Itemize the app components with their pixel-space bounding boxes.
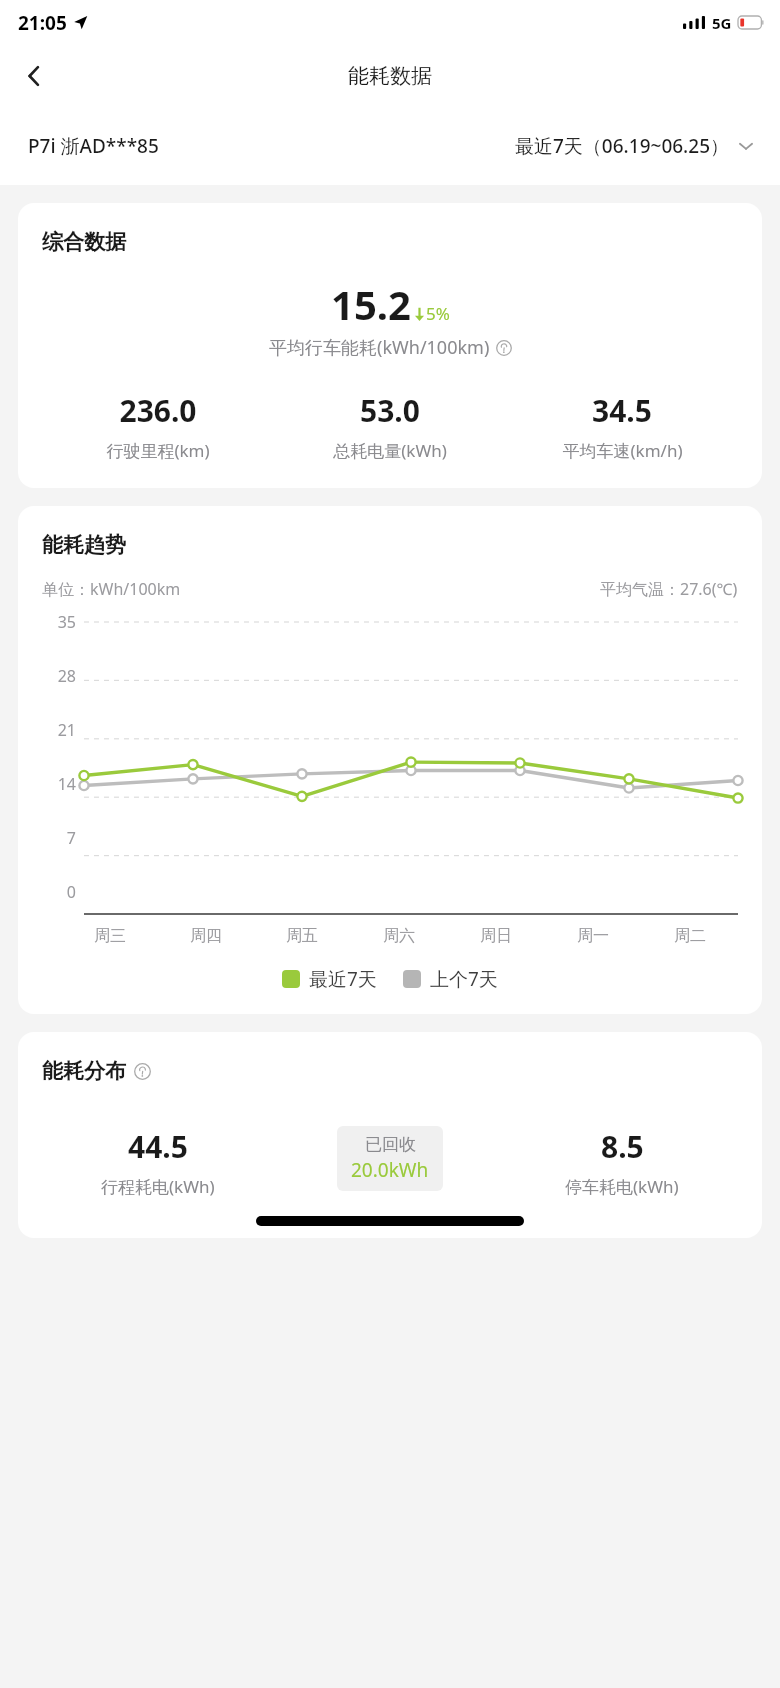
- staticText: 周六: [383, 926, 415, 946]
- staticText: P7i 浙AD***85: [28, 133, 159, 159]
- staticText: 7: [66, 827, 76, 849]
- staticText: 5%: [426, 302, 450, 325]
- staticText: 平均行车能耗(kWh/100km): [269, 335, 490, 360]
- button[interactable]: 53.0: [274, 390, 506, 462]
- staticText: 周日: [480, 926, 512, 946]
- staticText: 周四: [190, 926, 222, 946]
- staticText: 21:05: [18, 10, 67, 36]
- staticText: 21: [57, 719, 76, 741]
- staticText: 停车耗电(kWh): [565, 1175, 679, 1198]
- staticText: 平均车速(km/h): [562, 439, 683, 462]
- staticText: 34.5: [592, 390, 652, 431]
- staticText: 行驶里程(km): [106, 439, 210, 462]
- button[interactable]: Back: [8, 50, 60, 102]
- staticText: 平均气温：27.6(℃): [600, 578, 738, 600]
- staticText: 20.0kWh: [351, 1157, 429, 1183]
- staticText: 周三: [94, 926, 126, 946]
- staticText: 周五: [286, 926, 318, 946]
- staticText: 8.5: [601, 1126, 644, 1167]
- staticText: 总耗电量(kWh): [333, 439, 447, 462]
- staticText: 5G: [712, 13, 732, 33]
- staticText: 44.5: [128, 1126, 188, 1167]
- staticText: 能耗趋势: [42, 532, 126, 558]
- staticText: 行程耗电(kWh): [101, 1175, 215, 1198]
- staticText: 236.0: [119, 390, 197, 431]
- staticText: 能耗数据: [348, 63, 432, 89]
- button[interactable]: Help: [134, 1063, 151, 1080]
- staticText: 综合数据: [42, 229, 126, 255]
- staticText: 周二: [674, 926, 706, 946]
- staticText: 最近7天: [309, 966, 377, 992]
- staticText: 最近7天（06.19~06.25）: [515, 133, 730, 159]
- staticText: 35: [57, 611, 76, 633]
- button[interactable]: 上个7天: [403, 966, 498, 992]
- button[interactable]: 34.5: [506, 390, 738, 462]
- staticText: 0: [66, 881, 76, 903]
- staticText: 单位：kWh/100km: [42, 578, 181, 600]
- staticText: 已回收: [365, 1134, 416, 1155]
- button[interactable]: Help: [496, 340, 512, 356]
- button[interactable]: 236.0: [42, 390, 274, 462]
- staticText: 15.2: [331, 277, 411, 331]
- staticText: 上个7天: [430, 966, 498, 992]
- staticText: 周一: [577, 926, 609, 946]
- button[interactable]: 能耗分布: [18, 1032, 762, 1238]
- button[interactable]: 综合数据: [18, 203, 762, 488]
- staticText: 28: [57, 665, 76, 687]
- staticText: 53.0: [360, 390, 420, 431]
- staticText: 能耗分布: [42, 1058, 126, 1084]
- button[interactable]: 最近7天（06.19~06.25）: [511, 127, 758, 165]
- staticText: 14: [57, 773, 76, 795]
- button[interactable]: 最近7天: [282, 966, 377, 992]
- button[interactable]: 能耗趋势: [18, 506, 762, 1014]
